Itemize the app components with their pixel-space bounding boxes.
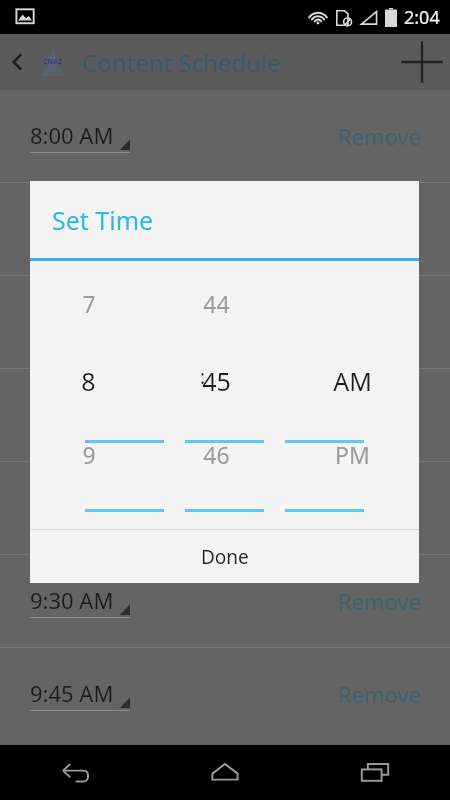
button[interactable]: Done <box>30 530 419 583</box>
staticText: PM <box>335 439 370 470</box>
button[interactable] <box>0 369 450 461</box>
button[interactable]: 9:45 AM <box>0 648 450 740</box>
staticText: Done <box>201 544 249 570</box>
staticText: 44 <box>203 288 230 319</box>
button[interactable]: 44 <box>147 288 285 319</box>
button[interactable]: Remove <box>324 578 436 624</box>
staticText: Content Schedule <box>82 46 281 79</box>
button[interactable]: Home <box>150 745 300 800</box>
button[interactable]: 8 <box>30 364 147 398</box>
staticText: Remove <box>338 679 422 709</box>
button[interactable]: Navigate up <box>0 34 36 90</box>
staticText: 45 <box>202 364 231 398</box>
staticText: 9:45 AM <box>30 678 114 708</box>
staticText: : <box>200 364 206 390</box>
button[interactable]: 8:00 AM <box>0 90 450 182</box>
button[interactable]: PM <box>285 439 419 470</box>
button[interactable]: Back <box>0 745 150 800</box>
staticText: CNAZ <box>43 57 63 67</box>
staticText: Set Time <box>52 203 154 237</box>
button[interactable]: 45 <box>147 364 285 398</box>
staticText: 9 <box>82 439 96 470</box>
staticText: 8:00 AM <box>30 120 114 150</box>
button[interactable]: 9 <box>30 439 147 470</box>
staticText: 8 <box>81 364 96 398</box>
staticText: 7 <box>82 288 96 319</box>
staticText: Remove <box>338 121 422 151</box>
staticText: AM <box>333 364 372 398</box>
button[interactable]: Recent apps <box>300 745 450 800</box>
button[interactable] <box>0 276 450 368</box>
staticText: 9:30 AM <box>30 585 114 615</box>
button[interactable]: Remove <box>324 113 436 159</box>
staticText: Remove <box>338 586 422 616</box>
staticText: 2:04 <box>404 5 440 30</box>
button[interactable] <box>0 462 450 554</box>
button[interactable]: Remove <box>324 671 436 717</box>
button[interactable]: 46 <box>147 439 285 470</box>
button[interactable]: 9:30 AM <box>0 555 450 647</box>
button[interactable]: AM <box>285 364 419 398</box>
button[interactable]: 7 <box>30 288 147 319</box>
staticText: 46 <box>203 439 230 470</box>
button[interactable]: Add schedule <box>394 34 450 90</box>
button[interactable] <box>0 183 450 275</box>
